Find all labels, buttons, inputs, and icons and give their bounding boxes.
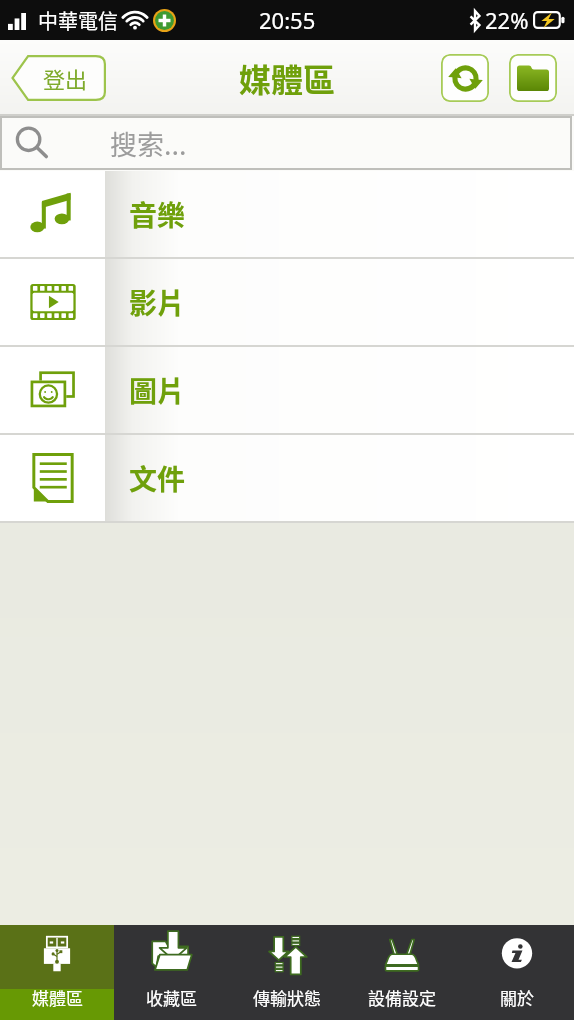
staticText: 媒體區 xyxy=(239,55,336,101)
button[interactable]: 關於 xyxy=(459,925,574,1020)
button[interactable]: 登出 xyxy=(11,55,106,101)
button[interactable]: 影片 xyxy=(0,259,574,345)
button[interactable]: 收藏區 xyxy=(114,925,229,1020)
button[interactable]: Browse folders xyxy=(509,54,557,102)
staticText: 搜索... xyxy=(110,124,187,163)
button[interactable]: 音樂 xyxy=(0,171,574,257)
staticText: 傳輸狀態 xyxy=(253,985,321,1010)
button[interactable]: 圖片 xyxy=(0,347,574,433)
button[interactable]: 傳輸狀態 xyxy=(229,925,344,1020)
staticText: 音樂 xyxy=(129,194,186,235)
button[interactable]: Refresh xyxy=(441,54,489,102)
staticText: 文件 xyxy=(129,458,186,499)
staticText: 關於 xyxy=(500,985,534,1010)
button[interactable]: 設備設定 xyxy=(344,925,459,1020)
button[interactable]: 媒體區 xyxy=(0,925,114,1020)
staticText: 影片 xyxy=(129,282,186,323)
staticText: 22% xyxy=(485,5,529,35)
staticText: 登出 xyxy=(43,62,88,94)
staticText: 設備設定 xyxy=(368,985,436,1010)
staticText: 媒體區 xyxy=(32,985,83,1010)
staticText: 收藏區 xyxy=(146,985,197,1010)
button[interactable]: 文件 xyxy=(0,435,574,521)
staticText: 20:55 xyxy=(259,5,316,35)
staticText: 中華電信 xyxy=(38,6,118,35)
staticText: 圖片 xyxy=(129,370,186,411)
